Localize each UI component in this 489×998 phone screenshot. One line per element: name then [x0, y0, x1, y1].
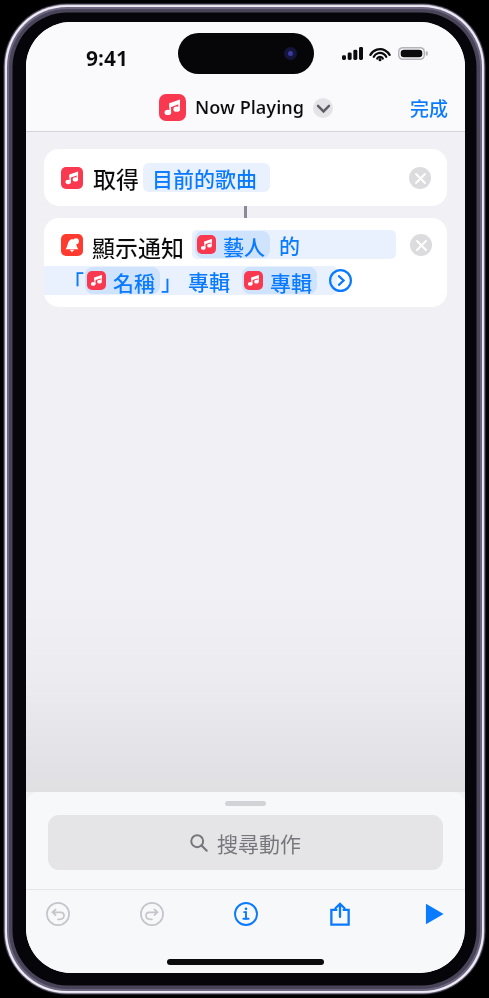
button[interactable]: Run [414, 894, 454, 934]
button[interactable]: Details [226, 894, 266, 934]
staticText: 的 [279, 230, 300, 259]
staticText: 藝人 [223, 231, 265, 258]
staticText: 」 [161, 266, 182, 295]
button[interactable]: 完成 [394, 86, 465, 130]
staticText: 「 [63, 266, 84, 295]
staticText: 9:41 [86, 44, 128, 73]
staticText: 目前的歌曲 [152, 163, 257, 192]
staticText: 完成 [410, 94, 449, 122]
staticText: 名稱 [113, 267, 155, 294]
button[interactable]: Remove action [409, 167, 431, 189]
staticText: 專輯 [188, 266, 230, 295]
button[interactable]: 顯示通知 [44, 218, 447, 307]
button[interactable]: Undo [38, 894, 78, 934]
button[interactable]: Redo [132, 894, 172, 934]
button[interactable]: 取得 [44, 149, 447, 206]
button[interactable]: Share [320, 894, 360, 934]
staticText: 專輯 [270, 267, 312, 294]
staticText: 顯示通知 [92, 230, 184, 259]
staticText: 搜尋動作 [217, 828, 301, 858]
button[interactable]: Show more [329, 269, 352, 292]
staticText: Now Playing [195, 95, 305, 120]
button[interactable]: 搜尋動作 [48, 815, 443, 870]
staticText: 取得 [93, 161, 139, 194]
button[interactable]: Remove action [410, 234, 432, 256]
button[interactable]: Now Playing [159, 94, 333, 121]
